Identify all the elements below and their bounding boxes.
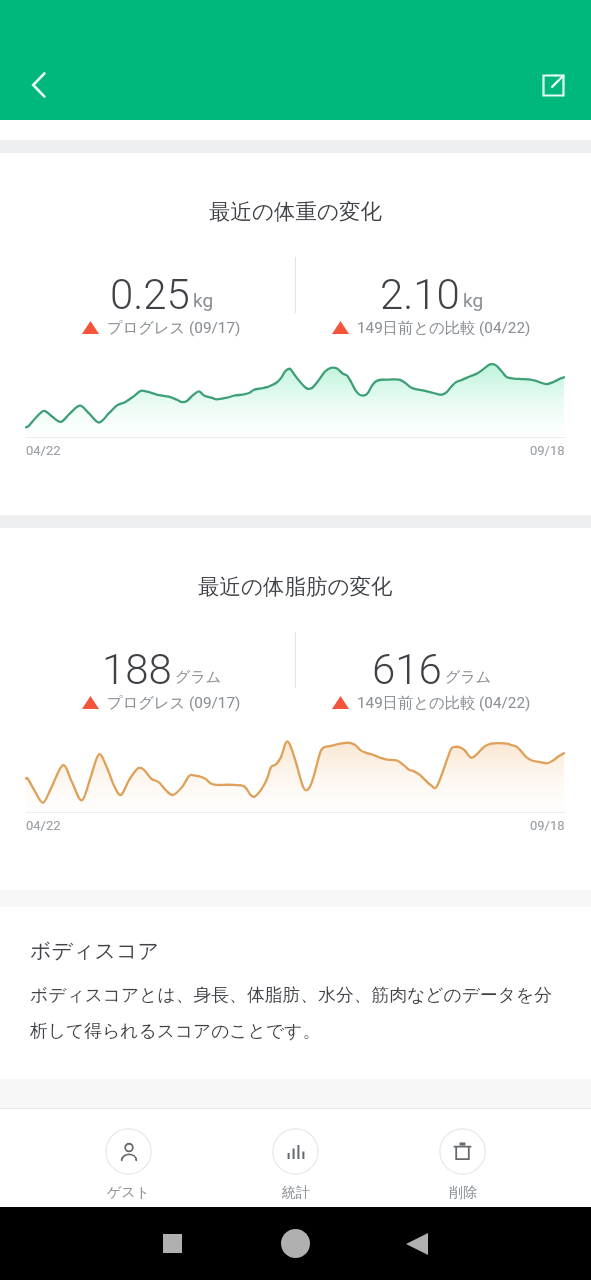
button[interactable]: 統計: [212, 1128, 379, 1202]
staticText: 削除: [449, 1184, 477, 1202]
staticText: 04/22: [26, 443, 61, 458]
staticText: 09/18: [530, 443, 565, 458]
button[interactable]: Back: [15, 61, 63, 109]
staticText: 統計: [282, 1184, 310, 1202]
staticText: 2.10: [380, 270, 460, 319]
button[interactable]: 削除: [379, 1128, 546, 1202]
staticText: 616: [372, 645, 442, 694]
staticText: ゲスト: [107, 1184, 150, 1202]
staticText: kg: [463, 289, 484, 311]
button[interactable]: ゲスト: [45, 1128, 212, 1202]
staticText: 04/22: [26, 818, 61, 833]
staticText: プログレス (09/17): [107, 693, 241, 712]
staticText: 149日前との比較 (04/22): [357, 318, 531, 337]
staticText: 09/18: [530, 818, 565, 833]
staticText: グラム: [175, 668, 222, 687]
staticText: 最近の体重の変化: [209, 198, 383, 225]
staticText: ボディスコアとは、身長、体脂肪、水分、筋肉などのデータを分: [30, 984, 552, 1006]
staticText: kg: [193, 289, 214, 311]
staticText: グラム: [445, 668, 492, 687]
staticText: 149日前との比較 (04/22): [357, 693, 531, 712]
staticText: 188: [102, 645, 172, 694]
staticText: ボディスコア: [30, 938, 159, 964]
staticText: プログレス (09/17): [107, 318, 241, 337]
staticText: 0.25: [110, 270, 190, 319]
staticText: 最近の体脂肪の変化: [198, 573, 393, 600]
staticText: 析して得られるスコアのことです。: [30, 1020, 321, 1042]
button[interactable]: Share: [529, 61, 577, 109]
